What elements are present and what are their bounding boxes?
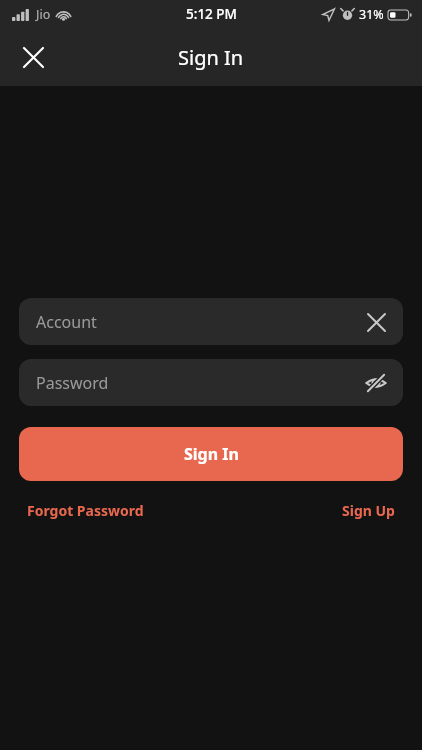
staticText: Sign Up — [342, 501, 395, 520]
staticText: Password — [36, 372, 359, 394]
button[interactable]: Show password — [359, 366, 393, 400]
button[interactable]: Sign Up — [334, 495, 403, 526]
staticText: 5:12 PM — [186, 5, 237, 23]
button[interactable]: Clear account — [359, 305, 393, 339]
staticText: Sign In — [184, 443, 239, 465]
button[interactable]: Account — [19, 298, 403, 345]
button[interactable]: Password — [19, 359, 403, 406]
staticText: Account — [36, 311, 359, 333]
staticText: 31% — [359, 6, 384, 23]
button[interactable]: Close — [9, 33, 57, 81]
staticText: Forgot Password — [27, 501, 144, 520]
button[interactable]: Sign In — [19, 427, 403, 481]
staticText: Sign In — [178, 44, 244, 71]
staticText: Jio — [36, 6, 51, 23]
button[interactable]: Forgot Password — [19, 495, 152, 526]
